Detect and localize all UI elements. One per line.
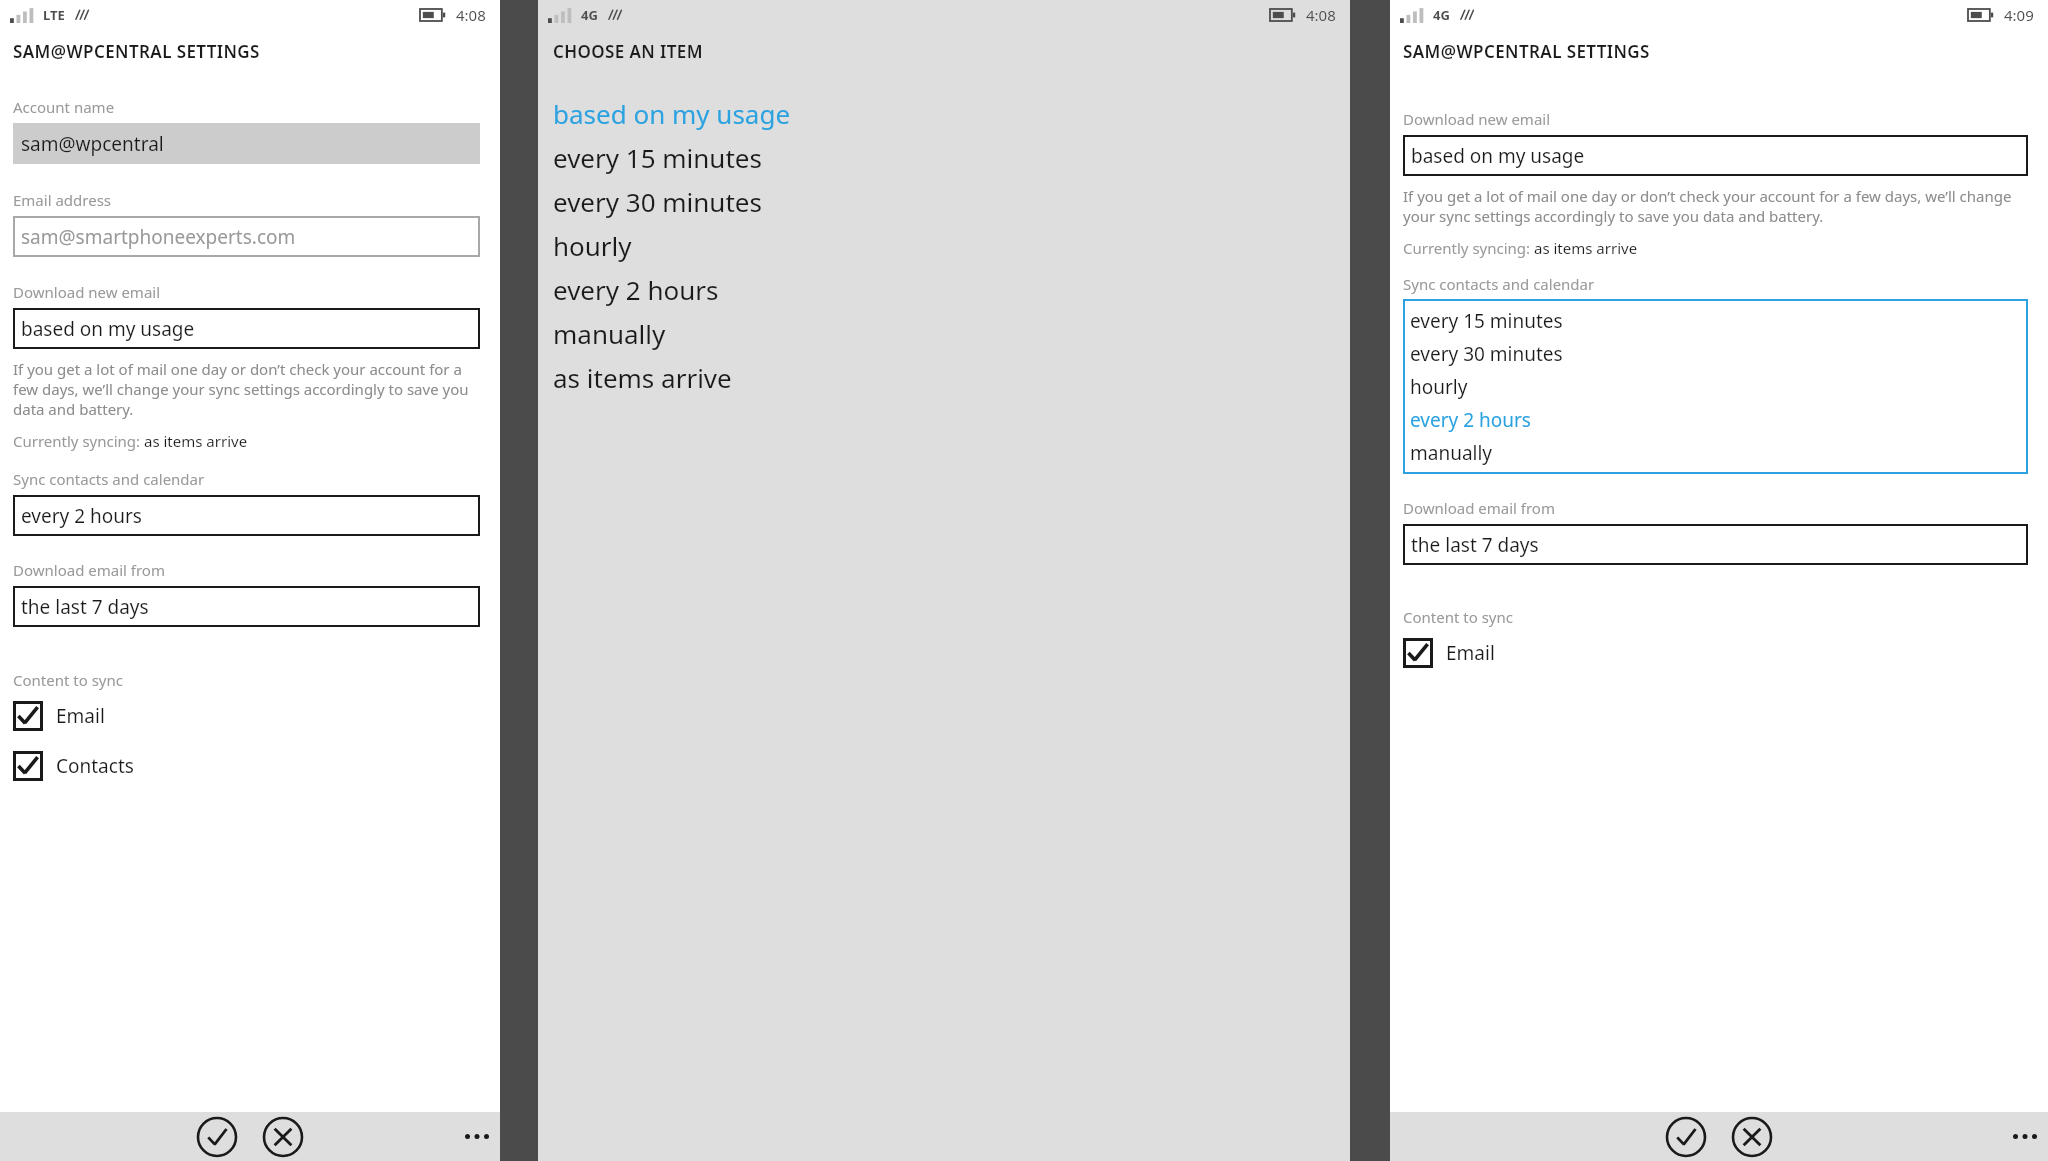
staticText: based on my usage [21,316,195,342]
staticText: CHOOSE AN ITEM [553,40,703,63]
staticText: every 30 minutes [553,184,762,219]
staticText: based on my usage [553,96,791,131]
staticText: Content to sync [13,670,123,690]
staticText: every 2 hours [1410,407,1531,433]
button[interactable]: Cancel [260,1114,306,1160]
button[interactable]: Accept [194,1114,240,1160]
button[interactable]: the last 7 days [13,586,480,627]
staticText: Sync contacts and calendar [13,469,205,489]
staticText: hourly [1410,374,1468,400]
button[interactable]: sam@smartphoneexperts.com [13,216,480,257]
button[interactable]: every 2 hours [1410,403,2021,436]
staticText: based on my usage [1411,143,1585,169]
button[interactable]: every 30 minutes [1410,337,2021,370]
button[interactable]: every 2 hours [13,495,480,536]
staticText: every 15 minutes [1410,308,1563,334]
staticText: sam@smartphoneexperts.com [21,224,296,250]
button[interactable]: Accept [1663,1114,1709,1160]
staticText: manually [553,316,666,351]
button[interactable]: manually [553,311,1335,355]
staticText: Currently syncing: [1403,238,1534,258]
staticText: Download new email [1403,109,1551,129]
staticText: hourly [553,228,632,263]
button[interactable]: every 2 hours [553,267,1335,311]
button[interactable]: hourly [553,223,1335,267]
staticText: the last 7 days [21,594,149,620]
button[interactable]: Contacts [13,748,480,784]
staticText: Content to sync [1403,607,1513,627]
button[interactable]: More options [454,1112,500,1161]
staticText: Email address [13,190,112,210]
button[interactable]: Email [13,698,480,734]
staticText: Download email from [13,560,165,580]
staticText: Download new email [13,282,161,302]
button[interactable]: Cancel [1729,1114,1775,1160]
staticText: SAM@WPCENTRAL SETTINGS [13,40,260,63]
staticText: Contacts [56,753,134,779]
staticText: Currently syncing: [13,431,144,451]
button[interactable]: the last 7 days [1403,524,2028,565]
staticText: every 2 hours [21,503,142,529]
staticText: as items arrive [553,360,732,395]
staticText: 4G [1433,6,1450,24]
staticText: every 30 minutes [1410,341,1563,367]
staticText: the last 7 days [1411,532,1539,558]
staticText: as items arrive [1534,238,1638,258]
button[interactable]: sam@wpcentral [13,123,480,164]
button[interactable]: hourly [1410,370,2021,403]
staticText: LTE [43,6,65,24]
staticText: Email [1446,640,1495,666]
button[interactable]: every 15 minutes [1410,304,2021,337]
staticText: Download email from [1403,498,1555,518]
staticText: If you get a lot of mail one day or don’… [13,359,480,419]
staticText: Account name [13,97,115,117]
staticText: 4G [581,6,598,24]
button[interactable]: based on my usage [1403,135,2028,176]
button[interactable]: based on my usage [553,91,1335,135]
staticText: SAM@WPCENTRAL SETTINGS [1403,40,1650,63]
staticText: Sync contacts and calendar [1403,274,1595,294]
staticText: every 2 hours [553,272,719,307]
button[interactable]: manually [1410,436,2021,469]
button[interactable]: as items arrive [553,355,1335,399]
staticText: If you get a lot of mail one day or don’… [1403,186,2028,226]
button[interactable]: based on my usage [13,308,480,349]
staticText: 4:08 [456,5,486,25]
button[interactable]: More options [2002,1112,2048,1161]
staticText: every 15 minutes [553,140,762,175]
staticText: sam@wpcentral [21,131,164,157]
staticText: 4:09 [2004,5,2034,25]
staticText: 4:08 [1306,5,1336,25]
button[interactable]: every 30 minutes [553,179,1335,223]
staticText: as items arrive [144,431,248,451]
staticText: Email [56,703,105,729]
staticText: manually [1410,440,1493,466]
button[interactable]: Email [1403,635,2028,671]
button[interactable]: every 15 minutes [553,135,1335,179]
